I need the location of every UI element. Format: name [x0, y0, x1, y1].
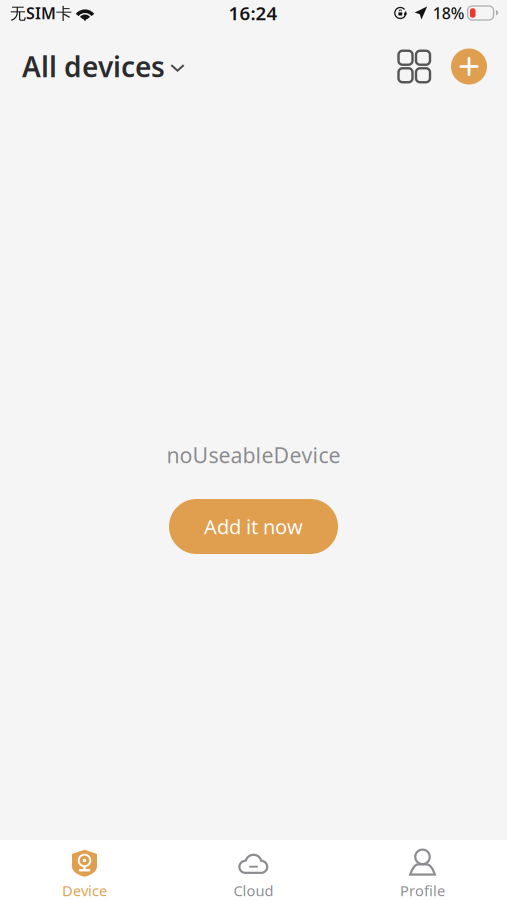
- staticText: Add it now: [204, 513, 303, 540]
- button[interactable]: Add device: [451, 48, 487, 84]
- staticText: All devices: [22, 48, 165, 85]
- button[interactable]: Profile: [338, 840, 507, 900]
- button[interactable]: Cloud: [169, 840, 338, 900]
- button[interactable]: Grid view: [398, 51, 430, 82]
- staticText: 无SIM卡: [10, 2, 72, 24]
- staticText: noUseableDevice: [166, 441, 340, 469]
- staticText: 18%: [433, 2, 465, 24]
- staticText: Device: [62, 881, 107, 900]
- staticText: 16:24: [228, 1, 277, 25]
- button[interactable]: All devices: [0, 46, 193, 86]
- button[interactable]: Add it now: [169, 499, 338, 554]
- button[interactable]: Device: [0, 840, 169, 900]
- staticText: Profile: [400, 881, 445, 900]
- staticText: Cloud: [233, 881, 273, 900]
